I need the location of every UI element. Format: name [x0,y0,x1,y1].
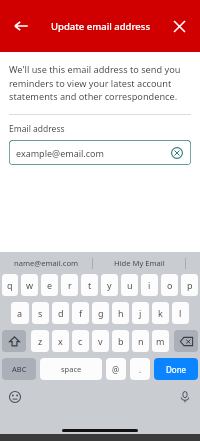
staticText: . [139,364,142,375]
button[interactable]: space [40,358,102,380]
staticText: e [47,279,53,291]
button[interactable]: n [132,330,149,352]
staticText: j [139,307,142,319]
staticText: x [58,335,63,347]
button[interactable]: w [21,274,38,296]
button[interactable]: ABC [2,358,36,380]
staticText: d [58,307,64,319]
button[interactable]: r [61,274,78,296]
button[interactable]: @ [106,358,126,380]
button[interactable]: d [52,302,69,324]
button[interactable]: Hide My Email [93,252,185,274]
button[interactable]: a [11,302,29,324]
button[interactable]: u [121,274,138,296]
staticText: z [38,335,43,347]
button[interactable]: b [112,330,129,352]
staticText: g [98,307,104,319]
button[interactable]: Shift [2,330,26,352]
staticText: space [61,364,82,374]
button[interactable]: Clear text [169,145,185,161]
button[interactable]: y [101,274,118,296]
staticText: t [88,279,92,291]
button[interactable]: f [72,302,89,324]
staticText: ABC [12,364,27,374]
button[interactable]: Dictation [176,388,194,406]
staticText: example@email.com [16,147,104,159]
staticText: Email address [9,123,65,135]
staticText: w [26,279,34,291]
staticText: Hide My Email [114,258,165,268]
button[interactable]: s [32,302,49,324]
button[interactable]: Backspace [174,330,198,352]
button[interactable]: c [72,330,89,352]
button[interactable]: x [52,330,69,352]
button[interactable]: l [172,302,189,324]
staticText: We'll use this email address to send you… [9,63,191,102]
button[interactable]: k [152,302,169,324]
button[interactable]: g [92,302,109,324]
staticText: @ [112,364,120,375]
button[interactable]: t [81,274,98,296]
button[interactable]: Close [164,11,194,41]
button[interactable]: Done [154,358,198,380]
button[interactable]: . [130,358,150,380]
button[interactable]: i [141,274,158,296]
staticText: r [68,279,72,291]
button[interactable]: m [152,330,169,352]
staticText: a [17,307,23,319]
staticText: y [107,279,112,291]
staticText: name@email.com [14,258,79,268]
staticText: s [38,307,43,319]
button[interactable]: Emoji [6,388,24,406]
button[interactable]: h [112,302,129,324]
staticText: o [167,279,173,291]
button[interactable]: name@email.com [0,252,92,274]
button[interactable]: e [41,274,58,296]
staticText: b [118,335,124,347]
button[interactable]: j [132,302,149,324]
staticText: l [179,307,182,319]
button[interactable]: v [92,330,109,352]
staticText: i [148,279,151,291]
staticText: f [79,307,83,319]
staticText: q [7,279,13,291]
button[interactable]: p [181,274,198,296]
button[interactable]: q [2,274,18,296]
button[interactable]: o [161,274,178,296]
staticText: u [127,279,133,291]
button[interactable]: Back [6,11,36,41]
staticText: h [118,307,124,319]
button[interactable]: example@email.com [9,140,191,165]
staticText: m [156,335,165,347]
staticText: Update email address [51,20,150,33]
staticText: n [138,335,144,347]
staticText: c [78,335,83,347]
button[interactable]: z [31,330,49,352]
staticText: k [158,307,163,319]
staticText: p [187,279,193,291]
staticText: Done [166,364,187,375]
staticText: v [98,335,103,347]
